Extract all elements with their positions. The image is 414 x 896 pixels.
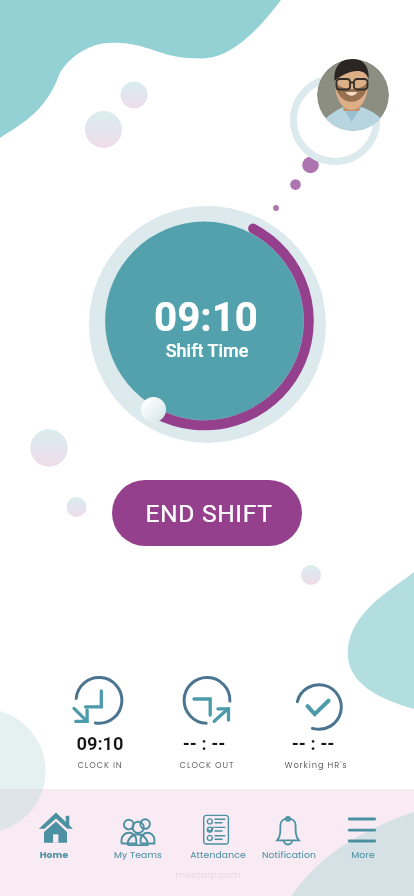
button[interactable]: Working HR's xyxy=(274,668,364,774)
button[interactable]: CLOCK OUT xyxy=(162,668,252,774)
staticText: CLOCK IN xyxy=(55,759,145,865)
button[interactable]: Profile xyxy=(317,59,389,131)
staticText: -- : -- xyxy=(268,733,358,839)
staticText: mostaql.com xyxy=(98,868,318,896)
staticText: More xyxy=(327,848,399,896)
button[interactable]: CLOCK IN xyxy=(54,668,144,774)
staticText: 09:10 xyxy=(96,294,316,896)
staticText: -- : -- xyxy=(159,733,249,839)
button[interactable]: Home xyxy=(20,808,92,864)
staticText: Shift Time xyxy=(97,340,317,896)
button[interactable]: My Teams xyxy=(102,808,174,864)
staticText: 09:10 xyxy=(55,733,145,839)
staticText: Notification xyxy=(253,848,325,896)
button[interactable]: Notification xyxy=(252,808,324,864)
staticText: Home xyxy=(18,848,90,896)
staticText: CLOCK OUT xyxy=(162,759,252,865)
staticText: END SHIFT xyxy=(145,499,273,528)
staticText: My Teams xyxy=(102,848,174,896)
button[interactable]: More xyxy=(326,808,398,864)
staticText: Working HR's xyxy=(271,759,361,865)
staticText: Attendance xyxy=(182,848,254,896)
button[interactable]: Attendance xyxy=(180,808,252,864)
button[interactable]: END SHIFT xyxy=(112,480,302,546)
